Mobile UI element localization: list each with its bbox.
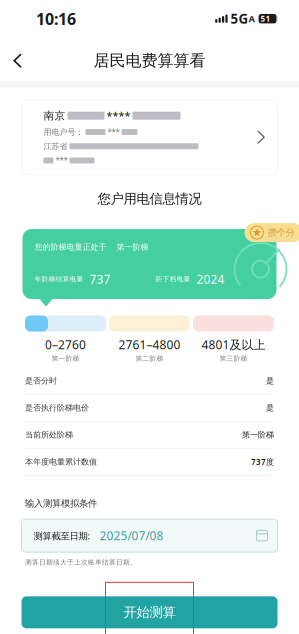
staticText: 开始测算 xyxy=(123,604,175,620)
staticText: 是 xyxy=(266,403,274,413)
staticText: 是否执行阶梯电价 xyxy=(25,403,89,413)
staticText: 2761–4800 xyxy=(118,336,180,352)
staticText: 0–2760 xyxy=(45,336,86,352)
staticText: 第二阶梯 xyxy=(135,354,163,363)
button[interactable]: 返回 xyxy=(0,40,46,82)
staticText: 江苏省 xyxy=(43,141,67,151)
staticText: 737度 xyxy=(251,456,274,467)
button[interactable]: 测算截至日期: xyxy=(21,519,277,552)
staticText: *** xyxy=(55,155,67,166)
staticText: **** xyxy=(106,109,130,123)
staticText: 南京 xyxy=(43,109,65,122)
staticText: 您户用电信息情况 xyxy=(97,191,201,207)
staticText: 2024 xyxy=(190,271,224,287)
staticText: 是否分时 xyxy=(25,376,57,386)
staticText: 测算日期须大于上次账单结算日期。 xyxy=(25,558,137,566)
staticText: 本年度电量累计数值 xyxy=(25,457,97,467)
staticText: 第一阶梯 xyxy=(51,354,79,363)
button[interactable]: 开始测算 xyxy=(21,596,277,628)
staticText: 用电户号： xyxy=(43,127,83,137)
staticText: 5G xyxy=(228,10,249,27)
staticText: 攒个分 xyxy=(267,227,294,238)
staticText: 第三阶梯 xyxy=(219,354,247,363)
staticText: 第一阶梯 xyxy=(242,430,274,440)
staticText: 第一阶梯 xyxy=(106,242,148,252)
staticText: 737 xyxy=(83,271,110,287)
staticText: A xyxy=(249,12,255,25)
staticText: 测算截至日期: xyxy=(33,529,90,542)
staticText: 当前所处阶梯 xyxy=(25,430,73,440)
staticText: *** xyxy=(107,127,119,137)
staticText: 居民电费算算看 xyxy=(93,51,205,70)
staticText: 4801及以上 xyxy=(201,336,265,352)
staticText: 您的阶梯电量正处于 xyxy=(34,242,106,252)
staticText: 是 xyxy=(266,376,274,386)
staticText: 10:16 xyxy=(36,8,76,29)
staticText: 输入测算模拟条件 xyxy=(25,498,97,509)
staticText: 2025/07/08 xyxy=(90,528,163,544)
staticText: 年阶梯结算电量 xyxy=(34,275,83,283)
staticText: 51 xyxy=(259,13,271,24)
staticText: 距下档电量 xyxy=(155,275,190,283)
button[interactable]: 南京 xyxy=(21,100,277,175)
